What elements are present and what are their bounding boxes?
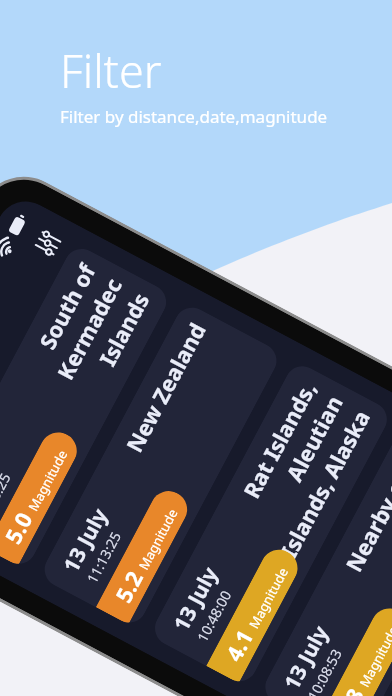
staticText: New Zealand <box>108 317 212 477</box>
button[interactable]: South of Kermadec Islands <box>0 243 172 570</box>
staticText: 11:13:25 <box>82 528 125 586</box>
staticText: 11:13:25 <box>0 469 15 528</box>
staticText: 3.8 <box>328 682 370 696</box>
staticText: Magnitude <box>355 623 392 690</box>
staticText: 4.1 <box>218 624 260 666</box>
staticText: Rat Islands, Aleutian Islands, Alaska <box>218 376 377 565</box>
staticText: 13 July <box>0 444 4 519</box>
staticText: Magnitude <box>24 447 71 514</box>
staticText: Filter <box>60 40 162 101</box>
button[interactable]: Filter <box>32 227 64 260</box>
staticText: Magnitude <box>245 564 292 632</box>
staticText: South of Kermadec Islands <box>0 259 156 448</box>
staticText: 5.2 <box>108 565 149 607</box>
staticText: Nearby coast of Texas <box>329 435 392 609</box>
staticText: 10:48:00 <box>192 587 236 645</box>
staticText: 10:08:53 <box>303 645 346 696</box>
staticText: Filter by distance,date,magnitude <box>60 105 328 128</box>
staticText: 13 July <box>56 503 114 577</box>
staticText: Magnitude <box>134 505 182 573</box>
button[interactable]: New Zealand <box>38 301 283 629</box>
staticText: 5.0 <box>0 506 39 549</box>
staticText: 13 July <box>167 562 225 636</box>
button[interactable]: Rat Islands, Aleutian Islands, Alaska <box>149 360 392 688</box>
button[interactable]: Nearby coast of Texas <box>259 419 392 696</box>
staticText: 13 July <box>277 620 335 695</box>
